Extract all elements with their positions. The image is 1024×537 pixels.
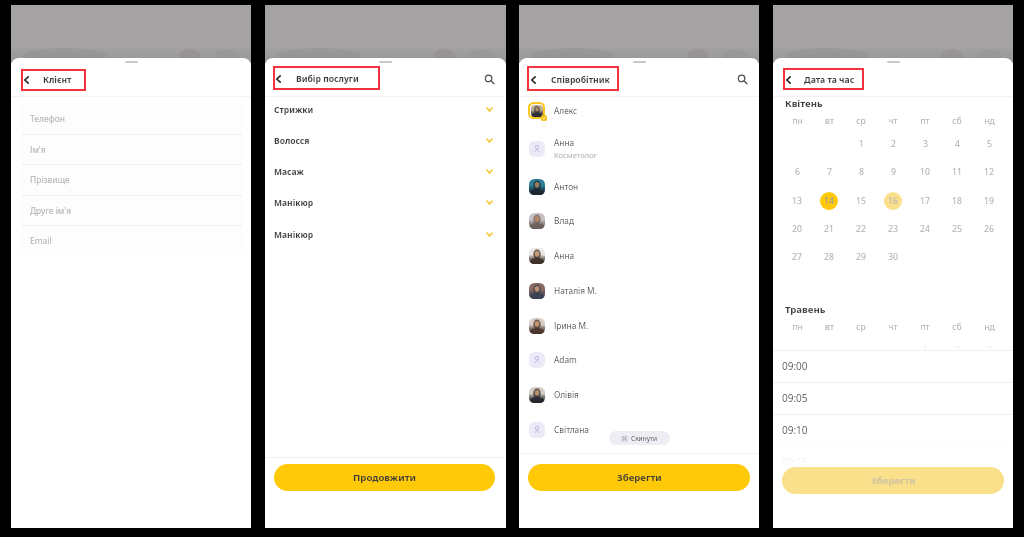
staticText: 14: [824, 195, 834, 207]
button[interactable]: 9: [884, 163, 902, 181]
button[interactable]: Алекс: [519, 93, 759, 128]
staticText: 2: [955, 344, 960, 349]
staticText: Прізвище: [30, 174, 70, 185]
button[interactable]: Скинути: [609, 431, 670, 445]
button[interactable]: 11: [948, 163, 966, 181]
button[interactable]: Антон: [519, 169, 759, 204]
button[interactable]: 21: [820, 220, 838, 238]
button[interactable]: 8: [852, 163, 870, 181]
staticText: нд: [984, 115, 995, 127]
button[interactable]: Дата та час: [804, 73, 855, 87]
button[interactable]: 7: [820, 163, 838, 181]
button[interactable]: Світлана: [519, 412, 759, 447]
staticText: ср: [856, 321, 866, 333]
staticText: пн: [792, 115, 803, 127]
button[interactable]: 14: [820, 192, 838, 210]
button[interactable]: 24: [916, 220, 934, 238]
staticText: Анна: [554, 137, 575, 148]
staticText: Клієнт: [43, 74, 72, 86]
button[interactable]: 17: [916, 192, 934, 210]
button[interactable]: 18: [948, 192, 966, 210]
button[interactable]: Прізвище: [21, 164, 243, 195]
button[interactable]: Ім'я: [21, 134, 243, 165]
staticText: Стрижки: [274, 104, 314, 116]
staticText: 20: [792, 223, 802, 235]
staticText: 30: [888, 251, 898, 263]
button[interactable]: 19: [980, 192, 998, 210]
button[interactable]: Анна: [519, 238, 759, 273]
staticText: 09:00: [782, 359, 808, 373]
button[interactable]: Манікюр: [265, 219, 506, 250]
button[interactable]: Друге ім'я: [21, 195, 243, 226]
staticText: Олівія: [554, 389, 579, 400]
button[interactable]: 09:00: [773, 350, 1013, 382]
button[interactable]: Олівія: [519, 377, 759, 412]
staticText: пт: [920, 321, 930, 333]
button[interactable]: 09:05: [773, 382, 1013, 414]
button[interactable]: 1: [852, 135, 870, 153]
button[interactable]: 20: [788, 220, 806, 238]
button[interactable]: Масаж: [265, 156, 506, 187]
staticText: чт: [888, 115, 898, 127]
button[interactable]: Search: [481, 71, 497, 87]
button[interactable]: 10: [916, 163, 934, 181]
button[interactable]: 2: [884, 135, 902, 153]
button[interactable]: 4: [948, 135, 966, 153]
button[interactable]: 13: [788, 192, 806, 210]
button[interactable]: 27: [788, 248, 806, 266]
button[interactable]: Манікюр: [265, 187, 506, 218]
button[interactable]: Клієнт: [43, 73, 72, 87]
button[interactable]: Зберегти: [528, 464, 750, 491]
button[interactable]: Search: [734, 71, 750, 87]
staticText: Друге ім'я: [30, 205, 71, 216]
button[interactable]: 23: [884, 220, 902, 238]
button[interactable]: Вибір послуги: [296, 72, 359, 86]
staticText: Влад: [554, 215, 574, 226]
staticText: пт: [920, 115, 930, 127]
staticText: 10: [920, 166, 930, 178]
staticText: 22: [856, 223, 866, 235]
button[interactable]: 29: [852, 248, 870, 266]
button[interactable]: Співробітник: [551, 73, 610, 87]
button[interactable]: 6: [788, 163, 806, 181]
staticText: пн: [792, 321, 803, 333]
button[interactable]: 28: [820, 248, 838, 266]
staticText: 21: [824, 223, 834, 235]
button[interactable]: 15: [852, 192, 870, 210]
button[interactable]: 09:10: [773, 414, 1013, 446]
button[interactable]: 12: [980, 163, 998, 181]
button[interactable]: Наталія М.: [519, 273, 759, 308]
button[interactable]: Телефон: [21, 103, 243, 134]
button[interactable]: Back: [271, 72, 285, 86]
button[interactable]: Стрижки: [265, 94, 506, 125]
button[interactable]: Adam: [519, 342, 759, 377]
button[interactable]: 09:15: [773, 446, 1013, 478]
button[interactable]: 3: [916, 135, 934, 153]
staticText: 29: [856, 251, 866, 263]
button[interactable]: 5: [980, 135, 998, 153]
button[interactable]: Ірина М.: [519, 308, 759, 343]
button[interactable]: Волосся: [265, 125, 506, 156]
staticText: 25: [952, 223, 962, 235]
staticText: нд: [984, 321, 995, 333]
button[interactable]: Продовжити: [274, 464, 495, 491]
button[interactable]: Зберегти: [782, 467, 1004, 494]
staticText: ср: [856, 115, 866, 127]
button[interactable]: Back: [781, 73, 795, 87]
button[interactable]: 26: [980, 220, 998, 238]
staticText: 23: [888, 223, 898, 235]
staticText: вт: [825, 321, 834, 333]
button[interactable]: 16: [884, 192, 902, 210]
button[interactable]: Анна: [519, 128, 759, 169]
button[interactable]: Email: [21, 225, 243, 256]
staticText: 13: [792, 195, 802, 207]
button[interactable]: 25: [948, 220, 966, 238]
button[interactable]: 30: [884, 248, 902, 266]
button[interactable]: 22: [852, 220, 870, 238]
button[interactable]: Влад: [519, 203, 759, 238]
button[interactable]: Back: [19, 73, 33, 87]
button[interactable]: Back: [526, 73, 540, 87]
